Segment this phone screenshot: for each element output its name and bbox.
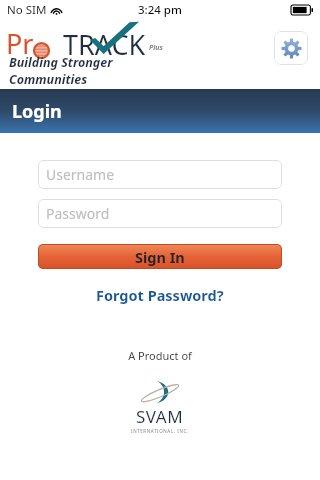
staticText: A Product of [128, 348, 192, 363]
staticText: Sign In [135, 247, 185, 267]
staticText: Login [12, 99, 62, 124]
staticText: No SIM [7, 2, 47, 18]
button[interactable]: Forgot Password? [92, 283, 228, 307]
button[interactable]: Username [38, 160, 282, 189]
staticText: Username [46, 165, 115, 184]
button[interactable]: Sign In [38, 244, 282, 269]
button[interactable]: Settings [274, 31, 308, 65]
staticText: Forgot Password? [96, 285, 224, 305]
staticText: TRACK [63, 26, 146, 63]
staticText: SVAM [136, 405, 184, 428]
staticText: INTERNATIONAL, INC. [131, 428, 189, 434]
staticText: Building Stronger Communities [9, 54, 179, 88]
staticText: Pr [6, 25, 34, 62]
button[interactable]: Password [38, 199, 282, 228]
staticText: Plus [149, 43, 163, 53]
staticText: 3:24 pm [138, 2, 182, 18]
staticText: Password [46, 204, 110, 223]
